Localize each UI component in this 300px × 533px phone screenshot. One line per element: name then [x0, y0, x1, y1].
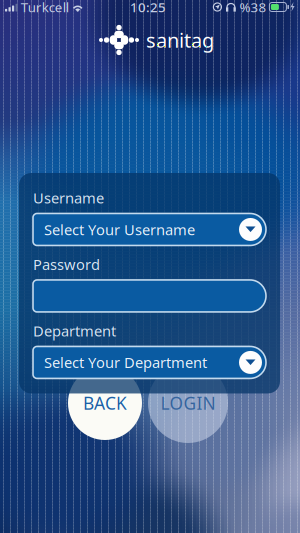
staticText: Turkcell: [21, 0, 69, 16]
button[interactable]: BACK: [68, 366, 142, 440]
staticText: Department: [33, 321, 116, 340]
staticText: LOGIN: [160, 391, 215, 414]
staticText: Select Your Username: [44, 220, 195, 239]
staticText: Select Your Department: [44, 353, 207, 372]
staticText: 10:25: [130, 0, 166, 16]
button[interactable]: Select Your Department: [33, 346, 266, 378]
button[interactable]: Select Your Username: [33, 213, 266, 245]
staticText: BACK: [83, 391, 127, 414]
staticText: sanitag: [146, 27, 214, 53]
button[interactable]: LOGIN: [148, 363, 228, 443]
staticText: Username: [33, 188, 104, 207]
staticText: %38: [239, 0, 266, 16]
staticText: Password: [33, 254, 100, 274]
button[interactable]: [33, 280, 266, 312]
